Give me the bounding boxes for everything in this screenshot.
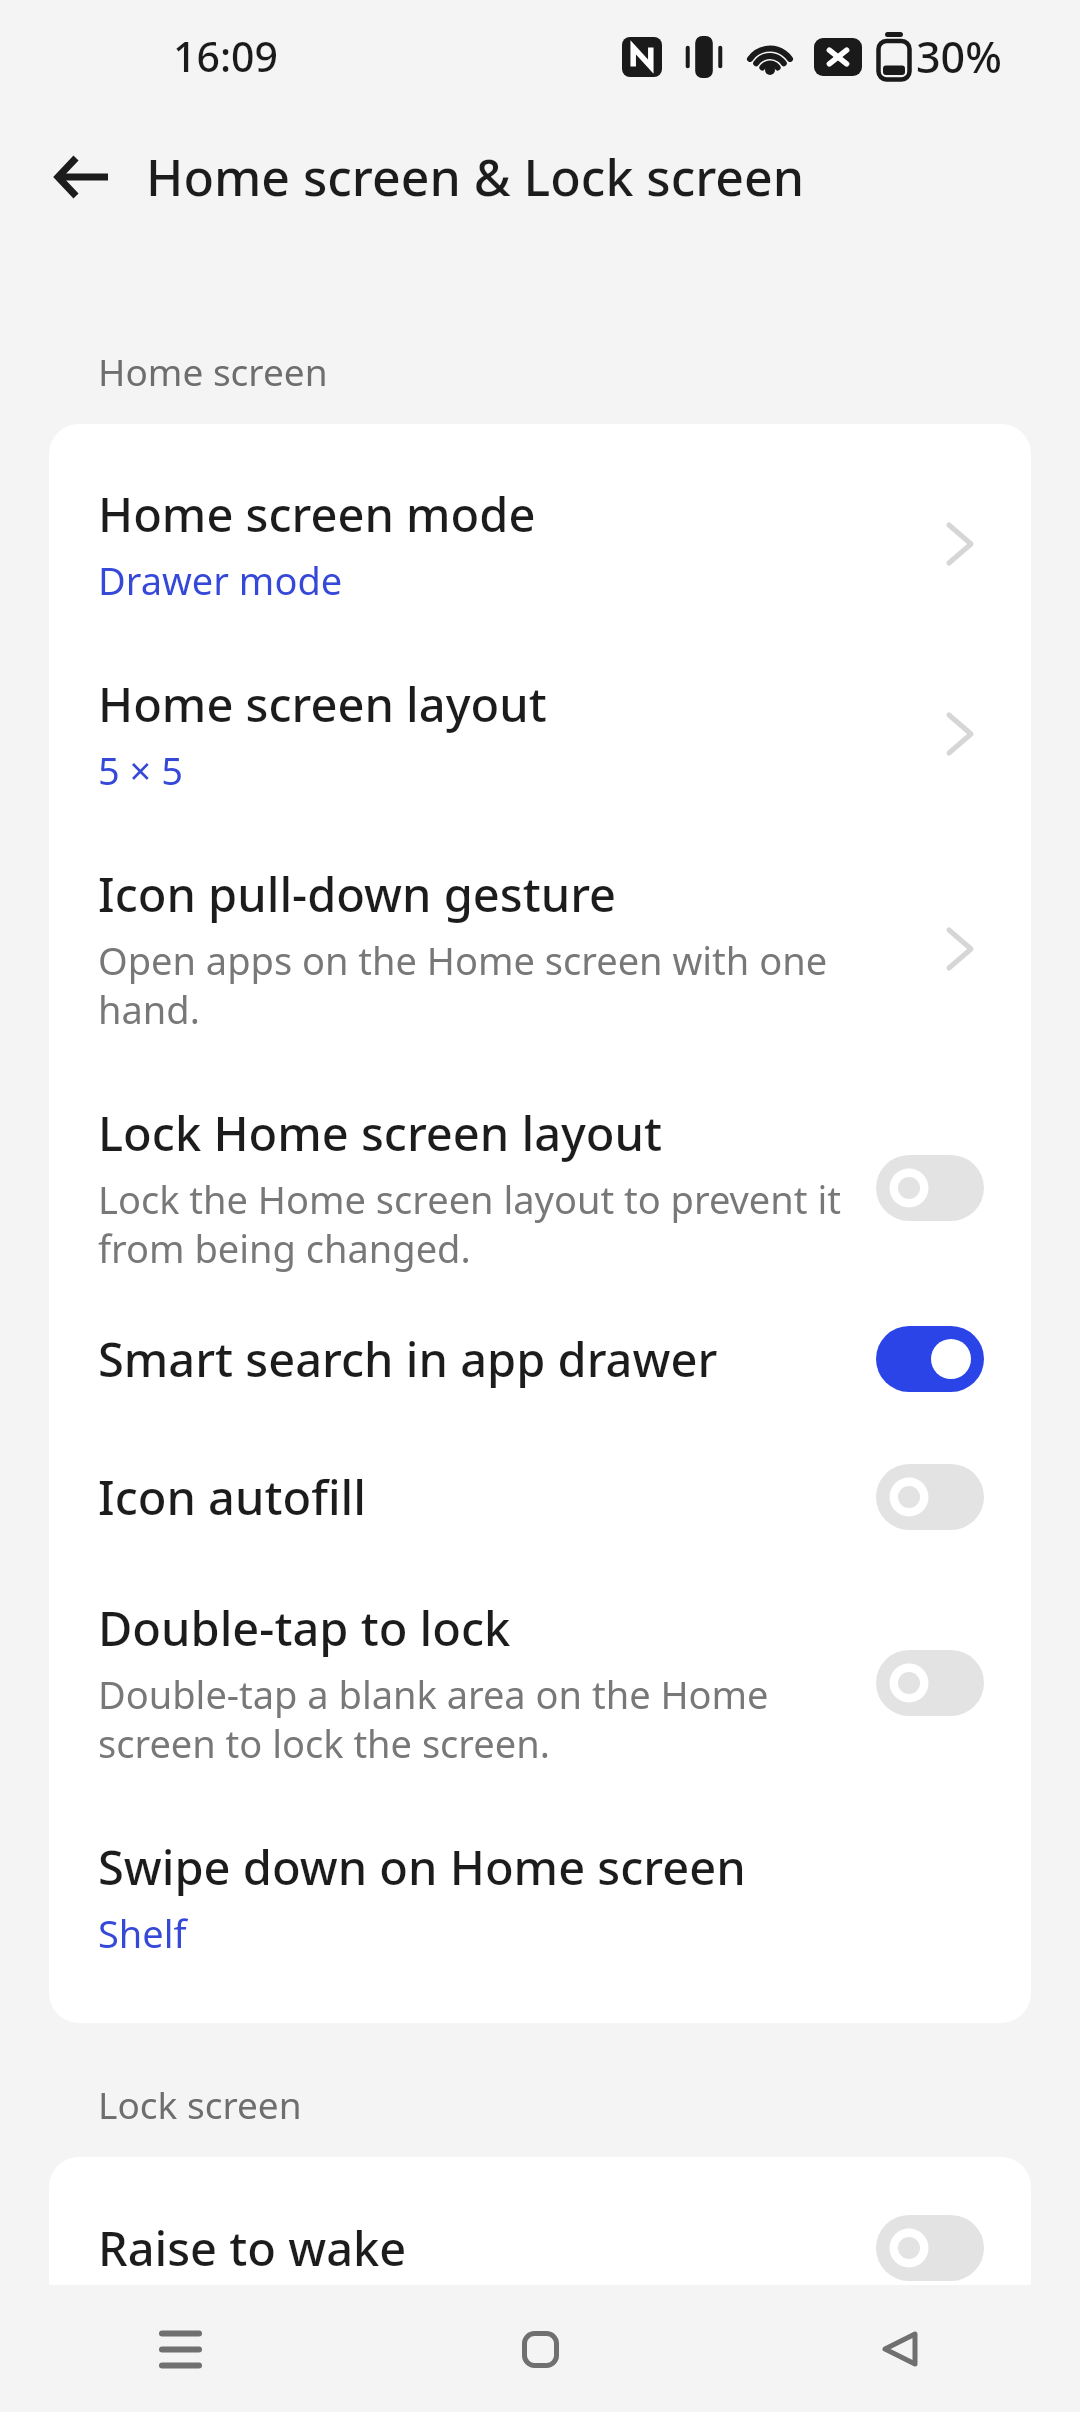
- button[interactable]: Icon pull-down gesture: [49, 796, 1031, 1035]
- button[interactable]: Off: [876, 1464, 984, 1530]
- staticText: Drawer mode: [98, 554, 343, 606]
- staticText: Home screen: [98, 346, 328, 396]
- staticText: Lock screen: [98, 2079, 302, 2129]
- staticText: Raise to wake: [98, 2216, 407, 2280]
- button[interactable]: Smart search in app drawer: [49, 1274, 1031, 1392]
- staticText: Home screen & Lock screen: [146, 143, 805, 211]
- button[interactable]: On: [876, 1326, 984, 1392]
- staticText: Icon autofill: [98, 1465, 366, 1529]
- button[interactable]: Lock Home screen layout: [49, 1035, 1031, 1274]
- staticText: Home screen mode: [98, 482, 536, 546]
- staticText: 30%: [916, 27, 1002, 86]
- button[interactable]: Raise to wake: [49, 2157, 1031, 2281]
- staticText: Double-tap a blank area on the Home scre…: [98, 1668, 860, 1769]
- button[interactable]: Back: [44, 139, 120, 215]
- button[interactable]: Home screen mode: [49, 424, 1031, 606]
- button[interactable]: Icon autofill: [49, 1392, 1031, 1530]
- staticText: 16:09: [173, 28, 278, 84]
- staticText: Lock Home screen layout: [98, 1101, 663, 1165]
- staticText: Shelf: [98, 1907, 187, 1959]
- button[interactable]: Double-tap to lock: [49, 1530, 1031, 1769]
- staticText: Open apps on the Home screen with one ha…: [98, 934, 920, 1035]
- staticText: Lock the Home screen layout to prevent i…: [98, 1173, 860, 1274]
- button[interactable]: Recent apps: [125, 2294, 235, 2404]
- staticText: Swipe down on Home screen: [98, 1835, 746, 1899]
- button[interactable]: Home: [485, 2294, 595, 2404]
- staticText: Home screen layout: [98, 672, 547, 736]
- button[interactable]: Back: [845, 2294, 955, 2404]
- staticText: Smart search in app drawer: [98, 1327, 718, 1391]
- staticText: Double-tap to lock: [98, 1596, 511, 1660]
- staticText: Icon pull-down gesture: [98, 862, 617, 926]
- button[interactable]: Off: [876, 1155, 984, 1221]
- button[interactable]: Home screen layout: [49, 606, 1031, 796]
- button[interactable]: Swipe down on Home screen: [49, 1769, 1031, 2023]
- staticText: 5 × 5: [98, 744, 183, 796]
- button[interactable]: Off: [876, 2215, 984, 2281]
- button[interactable]: Off: [876, 1650, 984, 1716]
